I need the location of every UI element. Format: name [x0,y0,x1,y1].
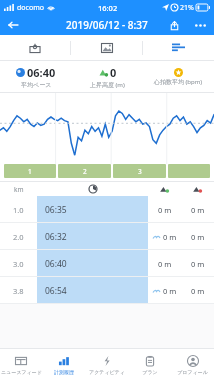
button[interactable]: プロフィール [171,349,214,380]
staticText: 0 m [163,232,177,242]
staticText: 06:32 [45,231,67,243]
button[interactable]: Back [5,17,21,33]
staticText: 1.0 [13,205,24,215]
staticText: プラン [142,369,158,375]
staticText: km [14,185,24,194]
button[interactable]: Stats [143,35,214,60]
staticText: 0 m [191,205,205,215]
staticText: 上昇高度 (m) [90,81,125,89]
staticText: 計測履歴 [54,369,74,375]
staticText: 3.0 [13,259,24,269]
staticText: 0 m [163,286,177,296]
button[interactable]: Photos [71,35,142,60]
staticText: 0 m [158,259,172,269]
staticText: 06:54 [45,285,67,297]
staticText: 0 m [158,205,172,215]
button[interactable]: 計測履歴 [42,349,85,380]
button[interactable]: プラン [128,349,171,380]
button[interactable]: 1 [4,164,56,178]
staticText: プロフィール [177,369,208,375]
button[interactable]: Share [166,17,182,33]
staticText: 06:35 [45,204,67,216]
button[interactable]: 0 [72,61,143,92]
button[interactable]: ニュースフィード [0,349,42,380]
staticText: 2 [83,167,87,176]
staticText: 0 m [191,232,205,242]
button[interactable]: 2 [58,164,111,178]
button[interactable]: 1.0 [0,196,214,223]
staticText: 2019/06/12 - 8:37 [66,18,148,32]
staticText: 0 m [191,286,205,296]
staticText: 1 [28,167,32,176]
staticText: ニュースフィード [1,369,42,375]
button[interactable]: 3.8 [0,277,214,304]
button[interactable]: アクティビティ [85,349,128,380]
staticText: アクティビティ [89,369,125,375]
staticText: 0 m [191,259,205,269]
staticText: 16:02 [98,3,118,13]
staticText: 平均ペース [21,81,52,89]
staticText: 06:40 [45,258,67,270]
button[interactable]: 2.0 [0,223,214,250]
staticText: 3 [138,167,142,176]
staticText: 0 [110,65,117,80]
button[interactable]: 06:40 [0,61,72,92]
staticText: 06:40 [27,65,56,80]
button[interactable]: 3 [113,164,166,178]
staticText: 21% [180,3,194,13]
button[interactable]: 3.0 [0,250,214,277]
button[interactable]: Map [0,35,70,60]
staticText: 心拍数平均 (bpm) [154,78,203,86]
button[interactable]: 心拍数平均 (bpm) [143,61,214,92]
staticText: docomo [17,3,44,13]
staticText: 3.8 [13,286,24,296]
staticText: 2.0 [13,232,24,242]
button[interactable]: More options [192,17,208,33]
